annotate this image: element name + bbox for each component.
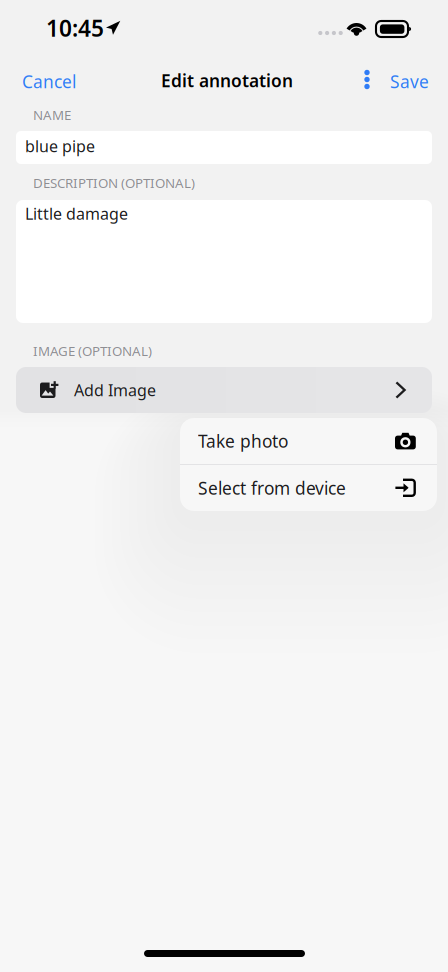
button[interactable]: Save xyxy=(383,63,436,100)
staticText: blue pipe xyxy=(25,135,95,157)
staticText: Select from device xyxy=(198,476,346,499)
button[interactable]: Add Image xyxy=(16,367,432,413)
staticText: DESCRIPTION (OPTIONAL) xyxy=(33,174,195,192)
button[interactable]: More options xyxy=(352,66,382,93)
staticText: Save xyxy=(390,70,429,93)
staticText: Little damage xyxy=(25,203,128,224)
staticText: Add Image xyxy=(74,379,156,401)
button[interactable]: Select from device xyxy=(180,465,437,511)
staticText: Edit annotation xyxy=(161,69,293,92)
staticText: Cancel xyxy=(22,70,76,93)
staticText: NAME xyxy=(33,106,71,124)
button[interactable]: Take photo xyxy=(180,418,437,464)
staticText: 10:45 xyxy=(46,13,104,43)
staticText: Take photo xyxy=(198,429,288,452)
staticText: IMAGE (OPTIONAL) xyxy=(33,342,152,360)
button[interactable]: Cancel xyxy=(15,63,83,100)
